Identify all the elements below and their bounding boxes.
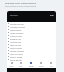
button[interactable]: Apps	[16, 61, 26, 68]
button[interactable]: Google One plan	[7, 22, 56, 25]
button[interactable]: Options	[50, 14, 54, 17]
button[interactable]: Audible Premium	[7, 49, 56, 52]
staticText: Netflix Standard	[10, 32, 24, 34]
staticText: Strava Summit	[10, 47, 22, 49]
button[interactable]: Search	[36, 61, 46, 68]
staticText: Manage your subscriptions	[5, 1, 37, 4]
button[interactable]: Microsoft 365	[7, 40, 56, 43]
staticText: and billing in one simple place	[5, 5, 37, 8]
staticText: Library	[29, 65, 34, 67]
button[interactable]: Home	[7, 61, 16, 68]
staticText: Creative Cloud	[10, 35, 22, 37]
button[interactable]: Switch Online	[7, 43, 56, 46]
staticText: Microsoft 365	[10, 41, 22, 43]
button[interactable]: iCloud+ 200GB	[7, 55, 56, 58]
staticText: New York Times	[10, 53, 24, 55]
staticText: Disney Bundle	[10, 59, 22, 61]
staticText: Apps	[19, 65, 23, 67]
staticText: Audible Premium	[10, 50, 25, 52]
button[interactable]: YouTube Premium	[7, 25, 56, 28]
staticText: iCloud+ 200GB	[10, 56, 23, 58]
button[interactable]: Strava Summit	[7, 46, 56, 49]
staticText: You	[50, 65, 53, 67]
staticText: Switch Online	[10, 44, 22, 46]
button[interactable]: New York Times	[7, 52, 56, 55]
staticText: Google One plan	[10, 23, 24, 25]
staticText: Spotify Family	[10, 29, 22, 31]
button[interactable]: Netflix Standard	[7, 31, 56, 34]
staticText: Home	[9, 65, 14, 67]
button[interactable]: Creative Cloud	[7, 34, 56, 37]
button[interactable]: Disney Bundle	[7, 58, 56, 61]
staticText: Search	[39, 65, 44, 67]
staticText: edit	[50, 14, 54, 17]
button[interactable]: Spotify Family	[7, 28, 56, 31]
button[interactable]: Library	[26, 61, 36, 68]
button[interactable]: You	[46, 61, 56, 68]
staticText: YouTube Premium	[10, 26, 26, 28]
button[interactable]: Dropbox Plus	[7, 37, 56, 40]
staticText: Dropbox Plus	[10, 38, 22, 40]
staticText: Settings	[10, 14, 18, 17]
